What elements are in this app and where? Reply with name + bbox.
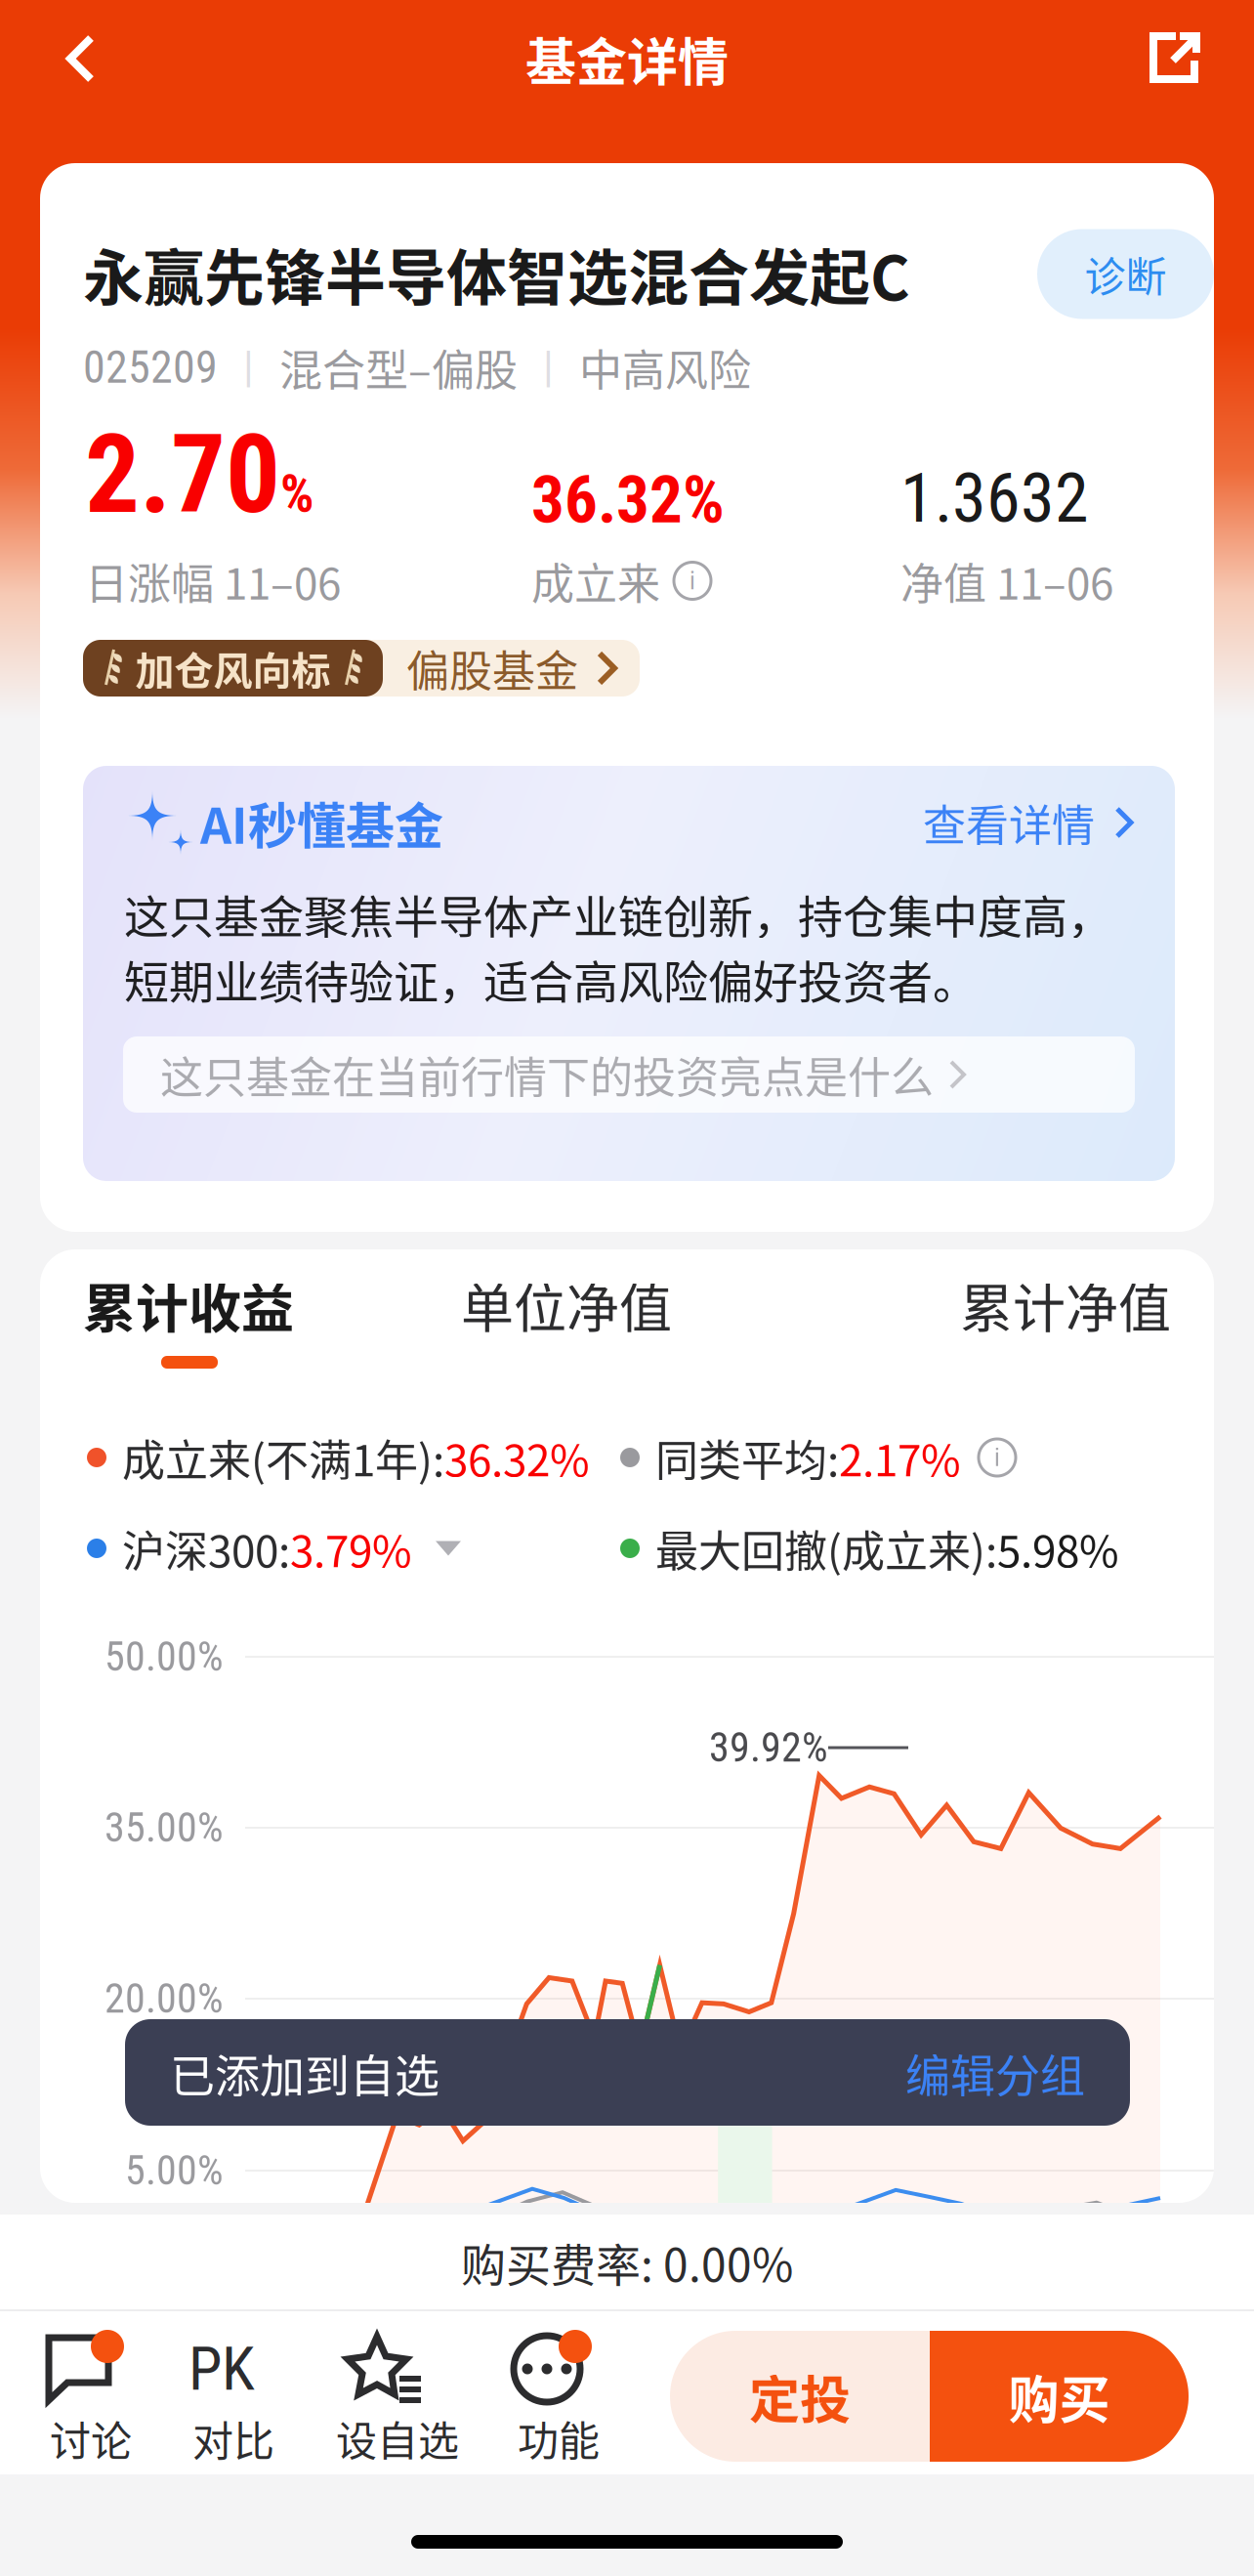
staticText: 购买费率: 0.00% bbox=[461, 2229, 793, 2294]
button[interactable]: 设自选 bbox=[314, 2325, 481, 2473]
staticText: 35.00% bbox=[104, 1804, 224, 1852]
staticText: 混合型–偏股 bbox=[279, 336, 518, 398]
staticText: | bbox=[243, 342, 254, 393]
staticText: 累计净值 bbox=[960, 1267, 1171, 1343]
button[interactable]: Back bbox=[23, 0, 139, 117]
button[interactable]: 诊断 bbox=[1037, 229, 1214, 319]
staticText: 查看详情 bbox=[923, 791, 1095, 854]
staticText: 加仓风向标 bbox=[135, 640, 331, 696]
staticText: 购买 bbox=[1008, 2360, 1110, 2433]
staticText: 设自选 bbox=[336, 2409, 459, 2468]
staticText: 功能 bbox=[518, 2409, 600, 2468]
staticText: 沪深300: bbox=[122, 1517, 290, 1579]
staticText: 36.32% bbox=[531, 462, 725, 538]
staticText: 20.00% bbox=[104, 1975, 224, 2023]
staticText: i bbox=[994, 1443, 1000, 1472]
staticText: 成立来(不满1年): bbox=[122, 1426, 444, 1489]
staticText: 净值 11–06 bbox=[900, 550, 1113, 612]
staticText: 对比 bbox=[192, 2409, 274, 2468]
button[interactable]: PK bbox=[150, 2325, 316, 2473]
staticText: 偏股基金 bbox=[406, 637, 578, 699]
staticText: 5.00% bbox=[125, 2147, 224, 2195]
button[interactable]: 定投 bbox=[670, 2331, 1189, 2462]
staticText: 36.32% bbox=[444, 1426, 590, 1489]
staticText: 2.17% bbox=[839, 1426, 961, 1489]
staticText: 同类平均: bbox=[655, 1426, 839, 1489]
staticText: 中高风险 bbox=[579, 336, 751, 398]
staticText: 日涨幅 11–06 bbox=[85, 550, 341, 612]
button[interactable]: 讨论 bbox=[8, 2325, 174, 2473]
staticText: 基金详情 bbox=[525, 22, 729, 95]
button[interactable]: 这只基金在当前行情下的投资亮点是什么 bbox=[123, 1036, 1135, 1113]
staticText: 成立来 bbox=[531, 550, 660, 612]
button[interactable]: 加仓风向标 bbox=[83, 640, 640, 697]
staticText: 永赢先锋半导体智选混合发起C bbox=[83, 230, 910, 318]
staticText: 1.3632 bbox=[900, 458, 1089, 538]
staticText: 已添加到自选 bbox=[170, 2040, 439, 2105]
staticText: 39.92% bbox=[709, 1724, 828, 1772]
staticText: 5.98% bbox=[997, 1517, 1119, 1579]
staticText: 讨论 bbox=[50, 2409, 132, 2468]
staticText: i bbox=[690, 566, 695, 595]
staticText: 这只基金在当前行情下的投资亮点是什么 bbox=[160, 1043, 934, 1106]
staticText: PK bbox=[188, 2333, 255, 2404]
staticText: | bbox=[543, 342, 554, 393]
staticText: 单位净值 bbox=[461, 1267, 672, 1343]
button[interactable]: Share bbox=[1115, 0, 1231, 117]
staticText: 诊断 bbox=[1085, 244, 1167, 304]
staticText: 2.70 bbox=[85, 411, 280, 538]
staticText: 50.00% bbox=[104, 1633, 224, 1681]
staticText: AI秒懂基金 bbox=[200, 787, 443, 858]
staticText: 定投 bbox=[749, 2360, 851, 2433]
staticText: 最大回撤(成立来): bbox=[655, 1517, 997, 1579]
staticText: 累计收益 bbox=[83, 1267, 294, 1343]
staticText: 025209 bbox=[83, 341, 218, 394]
button[interactable]: 编辑分组 bbox=[905, 2040, 1130, 2105]
staticText: 编辑分组 bbox=[905, 2040, 1085, 2105]
staticText: 3.79% bbox=[290, 1517, 412, 1579]
button[interactable]: 功能 bbox=[476, 2325, 642, 2473]
staticText: 这只基金聚焦半导体产业链创新，持仓集中度高，短期业绩待验证，适合高风险偏好投资者… bbox=[124, 881, 1112, 1011]
button[interactable]: 查看详情 bbox=[923, 791, 1136, 854]
staticText: % bbox=[280, 463, 313, 525]
